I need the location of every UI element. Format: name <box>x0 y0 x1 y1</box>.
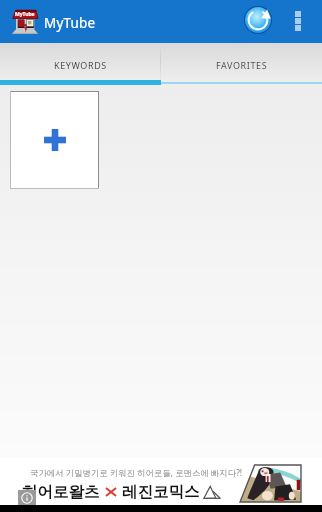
staticText: FAVORITES <box>216 59 268 71</box>
staticText: KEYWORDS <box>54 59 107 71</box>
staticText: 히어로왈츠 <box>22 482 100 502</box>
button[interactable]: Refresh <box>240 2 276 38</box>
button[interactable]: 국가에서 기밀병기로 키워진 히어로들, 로맨스에 빠지다?! <box>0 458 322 505</box>
button[interactable]: Add keyword <box>10 91 99 189</box>
button[interactable]: FAVORITES <box>161 43 322 80</box>
staticText: 레진코믹스 <box>122 482 200 502</box>
staticText: 국가에서 기밀병기로 키워진 히어로들, 로맨스에 빠지다?! <box>30 467 243 478</box>
button[interactable]: More options <box>285 0 322 43</box>
staticText: MyTube <box>15 11 35 18</box>
button[interactable]: KEYWORDS <box>0 43 160 80</box>
staticText: MyTube <box>44 14 96 32</box>
